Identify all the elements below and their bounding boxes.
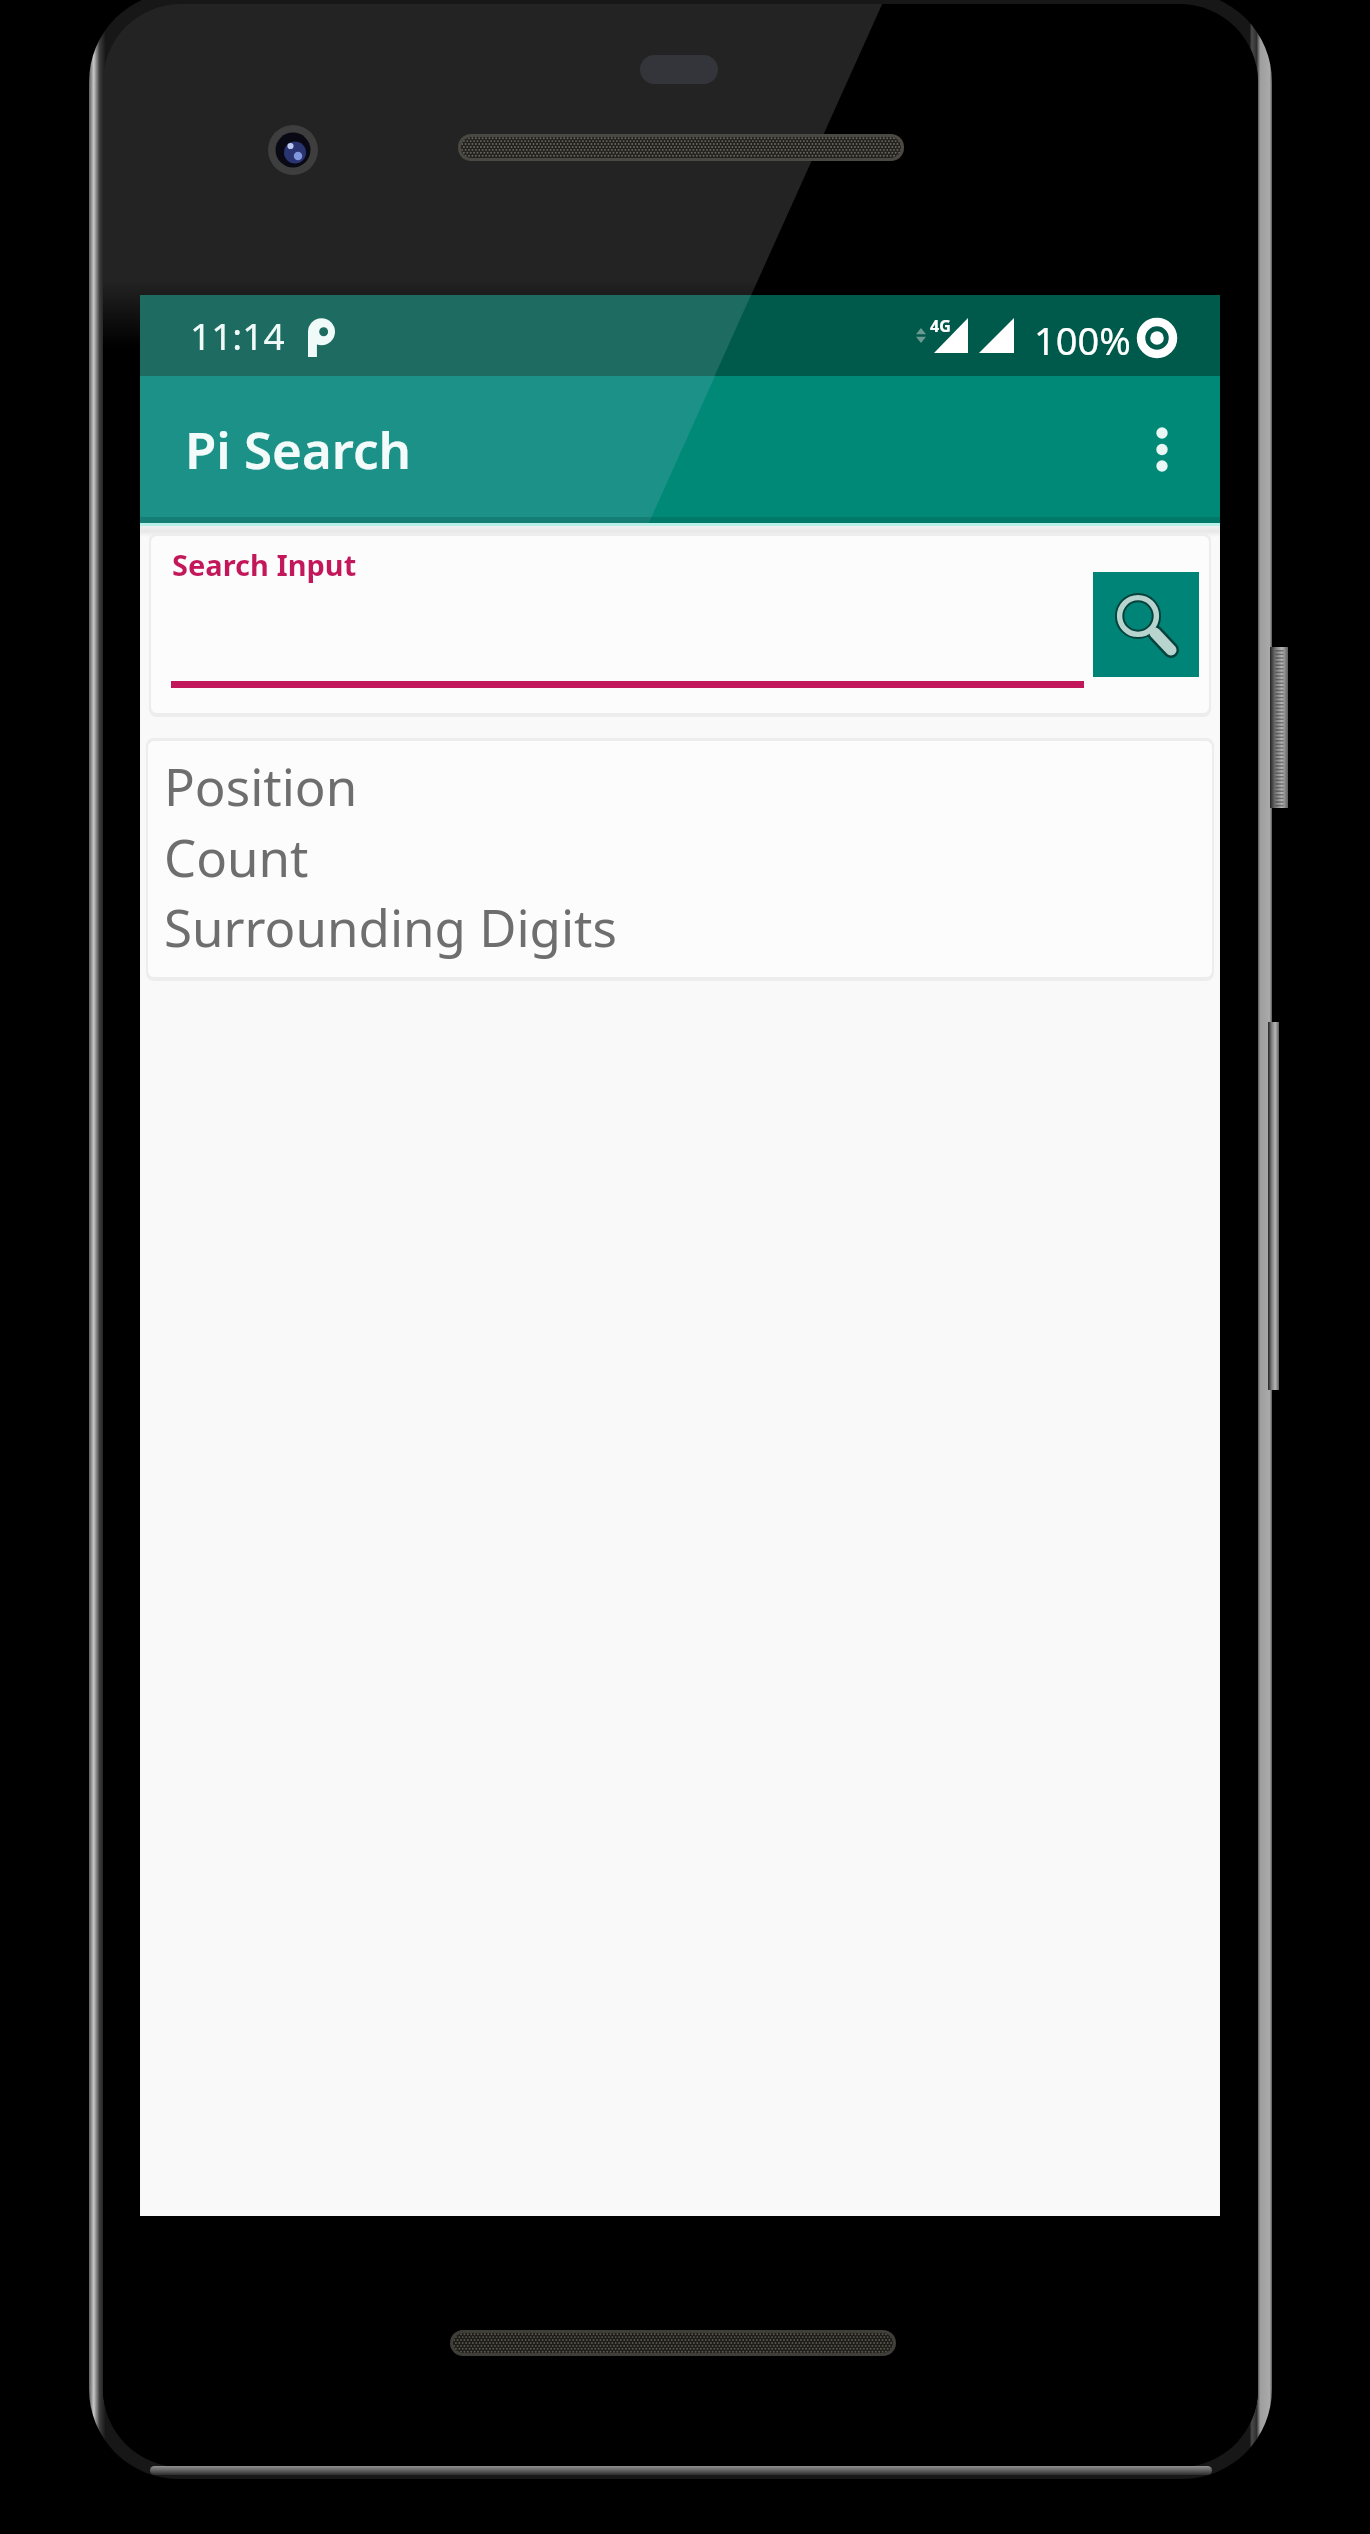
button[interactable]: Search [1093, 572, 1199, 677]
button[interactable]: More options [1114, 401, 1210, 498]
staticText: 4G [930, 315, 951, 337]
staticText: 100% [1034, 314, 1131, 366]
staticText: Pi Search [185, 414, 412, 483]
staticText: 11:14 [190, 310, 285, 360]
staticText: Search Input [172, 545, 357, 584]
staticText: Position [164, 751, 358, 820]
staticText: Count [164, 822, 309, 891]
staticText: Surrounding Digits [164, 892, 617, 961]
button[interactable]: Search Input text field [171, 540, 1084, 686]
